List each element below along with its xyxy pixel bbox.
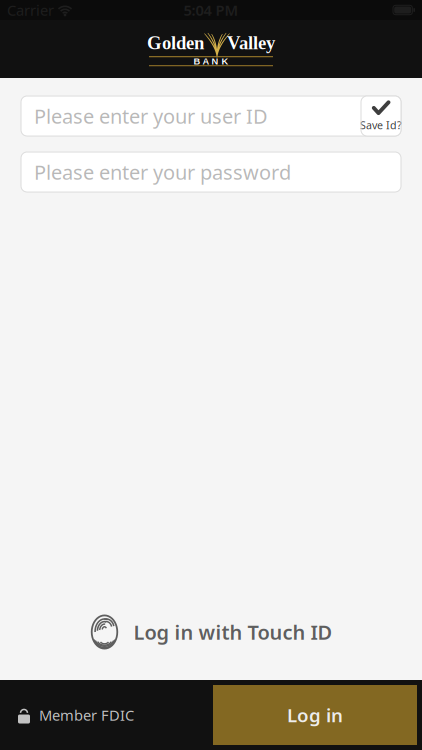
staticText: Member FDIC xyxy=(39,705,134,725)
staticText: Please enter your password xyxy=(34,159,291,185)
staticText: Log in xyxy=(287,703,343,727)
staticText: Log in with Touch ID xyxy=(133,619,332,645)
staticText: B A N K xyxy=(193,56,228,66)
button[interactable]: Log in with Touch ID xyxy=(79,606,342,658)
staticText: Valley xyxy=(227,33,275,53)
staticText: 5:04 PM xyxy=(183,0,238,20)
button[interactable]: Log in xyxy=(213,685,417,745)
staticText: Save Id? xyxy=(360,118,402,132)
staticText: Golden xyxy=(147,33,204,53)
staticText: Please enter your user ID xyxy=(34,103,268,129)
button[interactable]: Save Id? xyxy=(361,96,401,136)
staticText: Carrier xyxy=(7,0,54,20)
